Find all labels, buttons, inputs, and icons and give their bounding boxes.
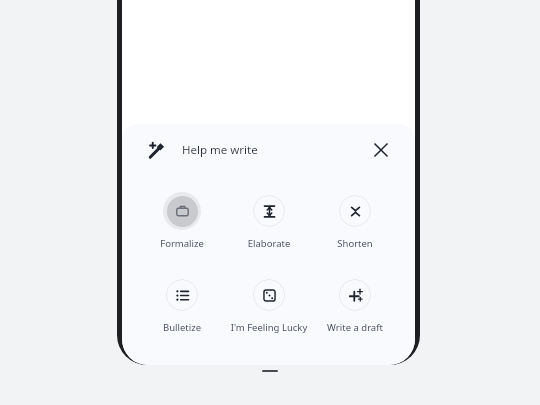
button[interactable]: Close xyxy=(367,136,395,164)
button[interactable]: Write a draft xyxy=(312,274,398,336)
staticText: Write a draft xyxy=(312,321,398,334)
staticText: I'm Feeling Lucky xyxy=(226,321,312,334)
button[interactable]: Elaborate xyxy=(226,190,312,252)
button[interactable]: Shorten xyxy=(312,190,398,252)
staticText: Shorten xyxy=(312,237,398,250)
staticText: Help me write xyxy=(182,142,258,158)
staticText: Bulletize xyxy=(139,321,225,334)
button[interactable]: Formalize xyxy=(139,190,225,252)
button[interactable]: I'm Feeling Lucky xyxy=(226,274,312,336)
button[interactable]: Bulletize xyxy=(139,274,225,336)
staticText: Formalize xyxy=(139,237,225,250)
staticText: Elaborate xyxy=(226,237,312,250)
